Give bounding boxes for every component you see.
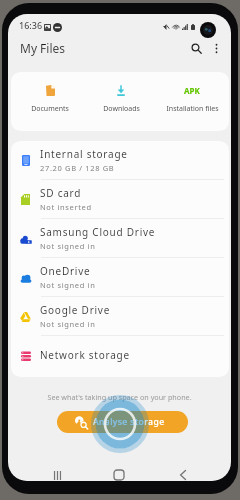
- staticText: Not signed in: [40, 241, 96, 251]
- staticText: Internal storage: [40, 147, 128, 161]
- staticText: Documents: [31, 104, 69, 114]
- button[interactable]: OneDrive: [11, 258, 229, 297]
- staticText: Network storage: [40, 348, 130, 362]
- button[interactable]: APK: [157, 72, 227, 131]
- staticText: 16:36: [19, 19, 43, 31]
- staticText: Analyse storage: [93, 416, 165, 428]
- button[interactable]: Documents: [15, 72, 85, 131]
- button[interactable]: Back: [165, 464, 201, 481]
- staticText: See what's taking up space on your phone…: [47, 392, 192, 402]
- button[interactable]: Home: [101, 464, 137, 481]
- staticText: Not signed in: [40, 319, 96, 329]
- staticText: SD card: [40, 186, 82, 200]
- button[interactable]: Downloads: [86, 72, 156, 131]
- button[interactable]: Google Drive: [11, 297, 229, 336]
- button[interactable]: Samsung Cloud Drive: [11, 219, 229, 258]
- button[interactable]: SD card: [11, 180, 229, 219]
- button[interactable]: More options: [206, 38, 226, 58]
- staticText: 27.20 GB / 128 GB: [40, 163, 115, 173]
- button[interactable]: Internal storage: [11, 141, 229, 180]
- button[interactable]: Analyse storage: [57, 411, 188, 433]
- staticText: Samsung Cloud Drive: [40, 225, 156, 239]
- staticText: Not inserted: [40, 202, 92, 212]
- staticText: Google Drive: [40, 303, 111, 317]
- staticText: APK: [184, 85, 200, 96]
- staticText: Installation files: [166, 104, 219, 114]
- button[interactable]: Search: [186, 38, 206, 58]
- staticText: OneDrive: [40, 264, 91, 278]
- staticText: My Files: [20, 40, 66, 56]
- button[interactable]: Network storage: [11, 336, 229, 375]
- staticText: Not signed in: [40, 280, 96, 290]
- button[interactable]: Recents: [39, 464, 75, 481]
- staticText: Downloads: [103, 104, 140, 114]
